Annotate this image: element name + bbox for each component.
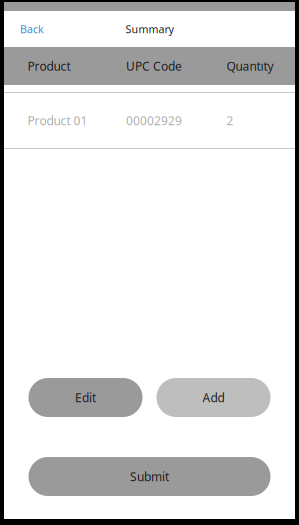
staticText: Product 01: [27, 112, 87, 128]
staticText: Edit: [75, 389, 96, 405]
button[interactable]: Back: [4, 13, 54, 45]
staticText: Back: [20, 22, 44, 36]
staticText: Submit: [130, 468, 169, 484]
staticText: Quantity: [226, 58, 273, 74]
button[interactable]: Edit: [28, 378, 142, 417]
staticText: Summary: [125, 22, 173, 36]
button[interactable]: Add: [156, 378, 270, 417]
button[interactable]: Product 01: [4, 93, 295, 148]
staticText: Add: [202, 389, 224, 405]
staticText: 2: [226, 112, 233, 128]
staticText: 00002929: [126, 112, 182, 128]
button[interactable]: Submit: [28, 457, 270, 496]
staticText: UPC Code: [126, 58, 182, 74]
staticText: Product: [27, 58, 70, 74]
